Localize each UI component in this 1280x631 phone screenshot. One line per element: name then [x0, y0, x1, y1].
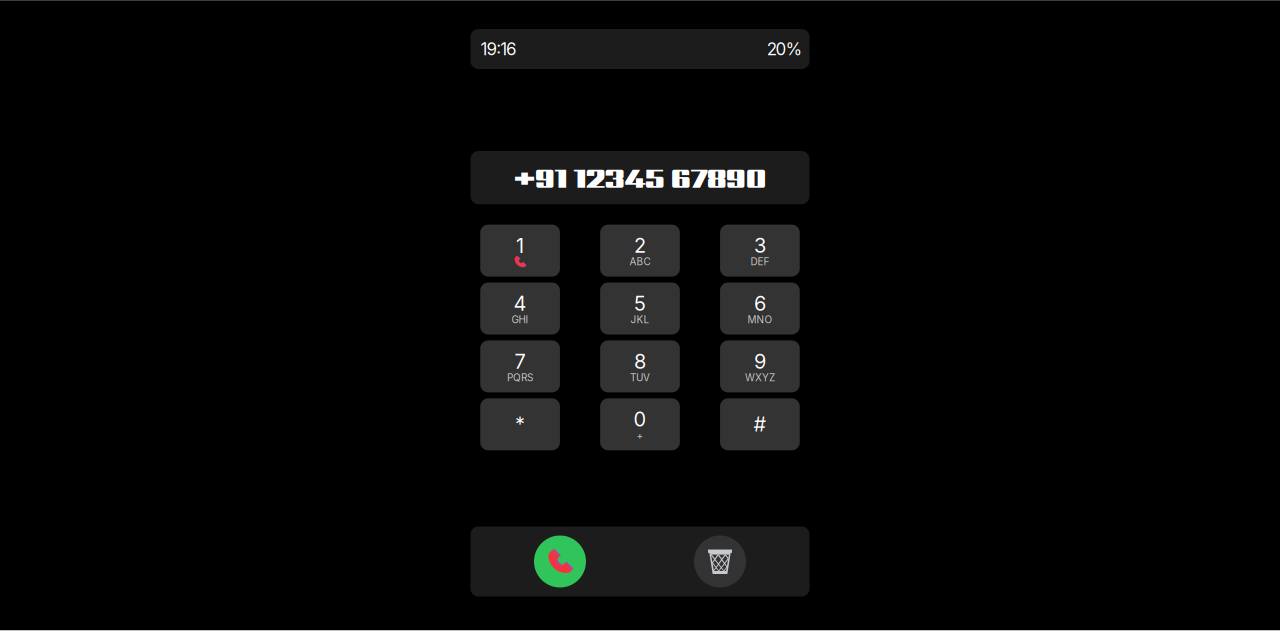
staticText: ABC [629, 256, 650, 268]
staticText: GHI [512, 313, 529, 326]
button[interactable]: 3 [720, 225, 800, 277]
staticText: 2 [634, 233, 646, 258]
staticText: 3 [754, 233, 766, 258]
staticText: 19:16 [480, 39, 517, 59]
button[interactable]: 8 [600, 340, 680, 392]
button[interactable]: Delete [694, 535, 746, 587]
button[interactable]: 6 [720, 282, 800, 334]
staticText: DEF [750, 256, 769, 268]
staticText: MNO [747, 313, 772, 326]
button[interactable]: Call [534, 535, 586, 587]
staticText: PQRS [507, 371, 533, 383]
staticText: WXYZ [745, 371, 775, 383]
button[interactable]: 0 [600, 398, 680, 450]
staticText: 9 [754, 349, 766, 373]
button[interactable]: 7 [480, 340, 560, 392]
staticText: + [636, 429, 643, 441]
staticText: 1 [516, 233, 524, 258]
button[interactable]: 1 [480, 225, 560, 277]
staticText: 7 [515, 349, 526, 373]
staticText: 8 [634, 349, 646, 373]
button[interactable]: # [720, 398, 800, 450]
button[interactable]: * [480, 398, 560, 450]
staticText: 20% [767, 39, 802, 59]
staticText: JKL [630, 313, 649, 326]
staticText: 6 [754, 291, 766, 316]
staticText: # [753, 412, 766, 436]
staticText: 0 [633, 407, 646, 431]
staticText: * [515, 412, 525, 436]
staticText: +91 12345 67890 [513, 157, 766, 198]
staticText: 5 [634, 291, 646, 316]
button[interactable]: 4 [480, 282, 560, 334]
staticText: TUV [630, 371, 650, 383]
staticText: 4 [514, 291, 527, 316]
button[interactable]: 2 [600, 225, 680, 277]
button[interactable]: 5 [600, 282, 680, 334]
button[interactable]: 9 [720, 340, 800, 392]
